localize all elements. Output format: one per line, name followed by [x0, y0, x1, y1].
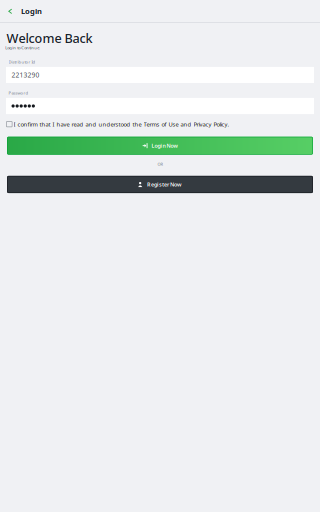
button[interactable]: Register Now [0, 167, 320, 193]
button[interactable]: Back [0, 0, 21, 22]
staticText: Welcome Back [7, 29, 93, 47]
staticText: Login Now [151, 142, 177, 149]
button[interactable]: I confirm that I have read and understoo… [0, 114, 320, 128]
staticText: I confirm that I have read and understoo… [13, 120, 229, 128]
button[interactable]: Login Now [0, 128, 320, 155]
button[interactable]: Login [21, 0, 42, 22]
staticText: Register Now [147, 181, 182, 188]
staticText: 2213290 [11, 70, 39, 79]
staticText: Login [21, 6, 42, 16]
staticText: Password [8, 90, 28, 96]
staticText: Login to Continue. [5, 45, 40, 50]
staticText: OR [157, 161, 162, 167]
staticText: Distributor Id [8, 59, 35, 65]
